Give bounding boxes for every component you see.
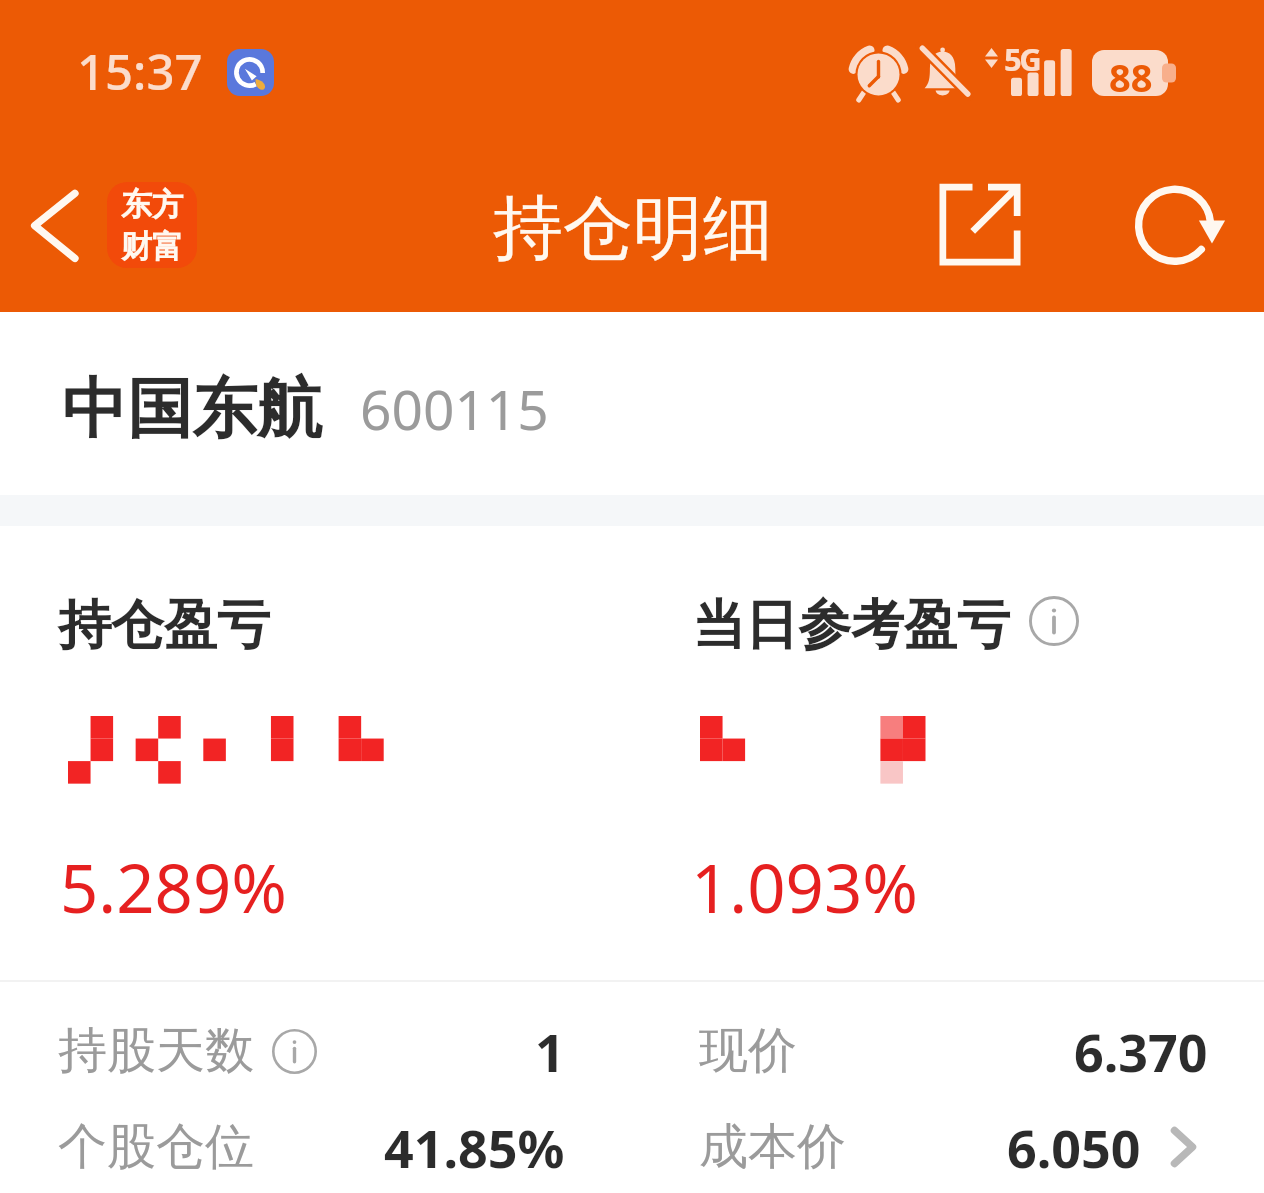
staticText: 持股天数: [58, 1020, 254, 1082]
staticText: 5G: [1004, 38, 1039, 80]
button[interactable]: 当日参考盈亏: [632, 556, 1264, 980]
staticText: 600115: [360, 371, 549, 446]
staticText: 财富: [121, 227, 183, 266]
staticText: 当日参考盈亏: [692, 592, 1010, 659]
staticText: 中国东航: [62, 368, 322, 450]
staticText: 东方: [121, 185, 183, 224]
staticText: 41.85%: [384, 1112, 565, 1183]
staticText: 88: [1109, 51, 1153, 97]
staticText: 6.370: [1074, 1016, 1208, 1087]
button[interactable]: 持仓盈亏: [0, 556, 632, 980]
staticText: 1.093%: [691, 841, 918, 932]
button[interactable]: Share: [924, 168, 1036, 280]
staticText: 成本价: [699, 1116, 846, 1178]
button[interactable]: 持股天数: [0, 1003, 1264, 1099]
staticText: 持仓明细: [493, 185, 773, 273]
staticText: 5.289%: [60, 841, 287, 932]
button[interactable]: Back: [0, 171, 100, 281]
staticText: 1: [535, 1016, 565, 1087]
staticText: 现价: [699, 1020, 797, 1082]
staticText: 15:37: [77, 38, 203, 105]
button[interactable]: 个股仓位: [0, 1099, 1264, 1193]
staticText: 6.050: [1007, 1112, 1141, 1183]
staticText: 持仓盈亏: [58, 592, 270, 659]
button[interactable]: East Money logo: [107, 182, 197, 268]
button[interactable]: 中国东航: [0, 312, 1264, 495]
button[interactable]: Refresh: [1124, 175, 1226, 277]
staticText: 个股仓位: [58, 1116, 254, 1178]
